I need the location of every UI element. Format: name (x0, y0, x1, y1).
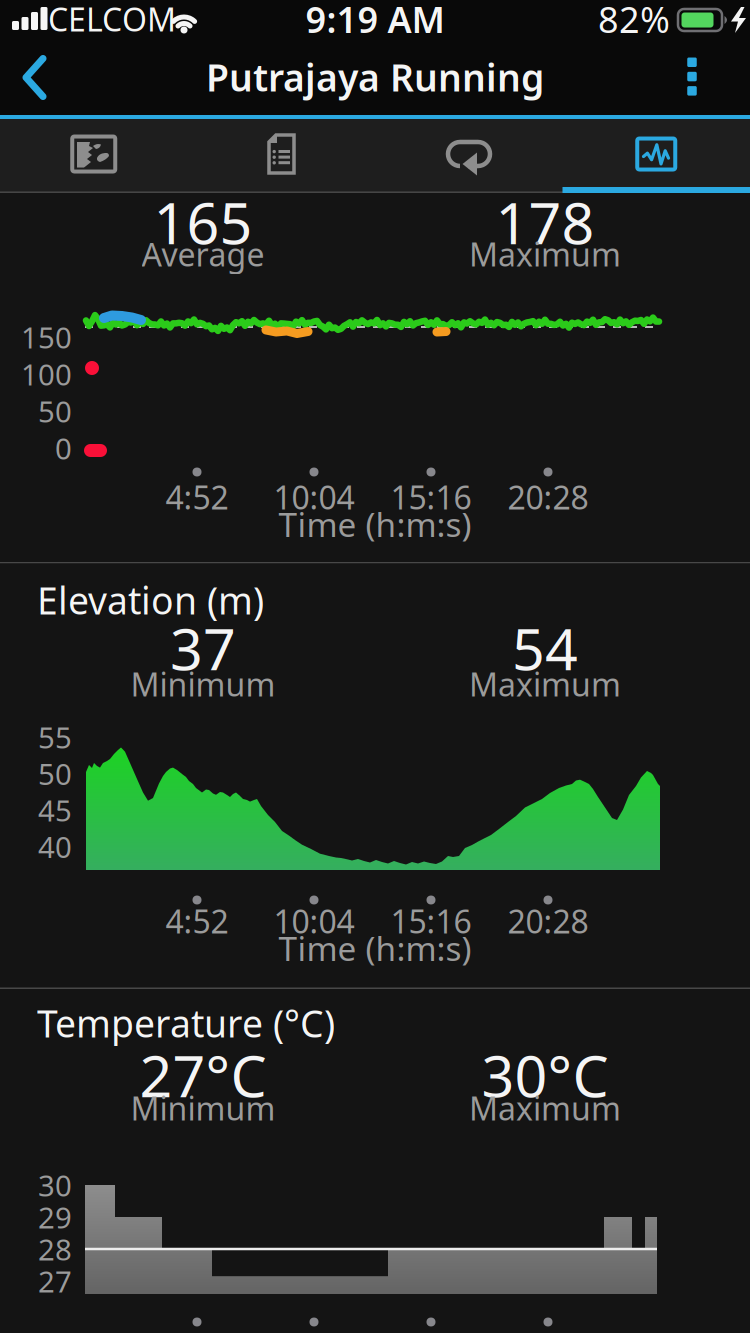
button[interactable]: More options (652, 40, 732, 115)
button[interactable]: Charts (562, 119, 750, 193)
staticText: 82% (598, 0, 670, 43)
staticText: 15:16 (390, 900, 471, 942)
staticText: 100 (21, 354, 72, 393)
staticText: 30 (38, 1165, 72, 1204)
staticText: 28 (38, 1229, 72, 1268)
staticText: 40 (38, 827, 72, 866)
staticText: 50 (38, 754, 72, 793)
staticText: 178 (495, 184, 594, 260)
staticText: 20:28 (507, 476, 588, 518)
staticText: 150 (21, 317, 72, 356)
staticText: Minimum (130, 1087, 275, 1129)
staticText: 29 (38, 1197, 72, 1236)
staticText: 45 (38, 790, 72, 829)
staticText: 27°C (139, 1037, 266, 1113)
staticText: 50 (38, 391, 72, 430)
staticText: Minimum (130, 663, 275, 705)
staticText: 4:52 (165, 900, 228, 942)
staticText: Maximum (469, 663, 621, 705)
staticText: Time (h:m:s) (278, 502, 471, 546)
staticText: Maximum (469, 233, 621, 275)
staticText: 10:04 (273, 900, 354, 942)
staticText: Average (141, 233, 264, 275)
staticText: CELCOM (48, 0, 176, 40)
staticText: Putrajaya Running (206, 52, 544, 102)
staticText: Temperature (°C) (37, 998, 335, 1048)
staticText: 9:19 AM (305, 0, 444, 43)
staticText: 165 (153, 184, 252, 260)
staticText: 4:52 (165, 476, 228, 518)
staticText: 10:04 (273, 476, 354, 518)
button[interactable]: Laps (375, 119, 562, 193)
staticText: 15:16 (390, 476, 471, 518)
staticText: 30°C (481, 1037, 608, 1113)
button[interactable]: Stats (187, 119, 375, 193)
staticText: 37 (170, 610, 236, 686)
staticText: 54 (512, 610, 578, 686)
staticText: 0 (55, 428, 72, 467)
button[interactable]: Map (0, 119, 187, 193)
staticText: Time (h:m:s) (278, 926, 471, 970)
staticText: Maximum (469, 1087, 621, 1129)
staticText: 20:28 (507, 900, 588, 942)
button[interactable]: Back (0, 40, 70, 115)
staticText: Elevation (m) (37, 575, 264, 625)
staticText: 55 (38, 717, 72, 756)
staticText: 27 (38, 1261, 72, 1300)
